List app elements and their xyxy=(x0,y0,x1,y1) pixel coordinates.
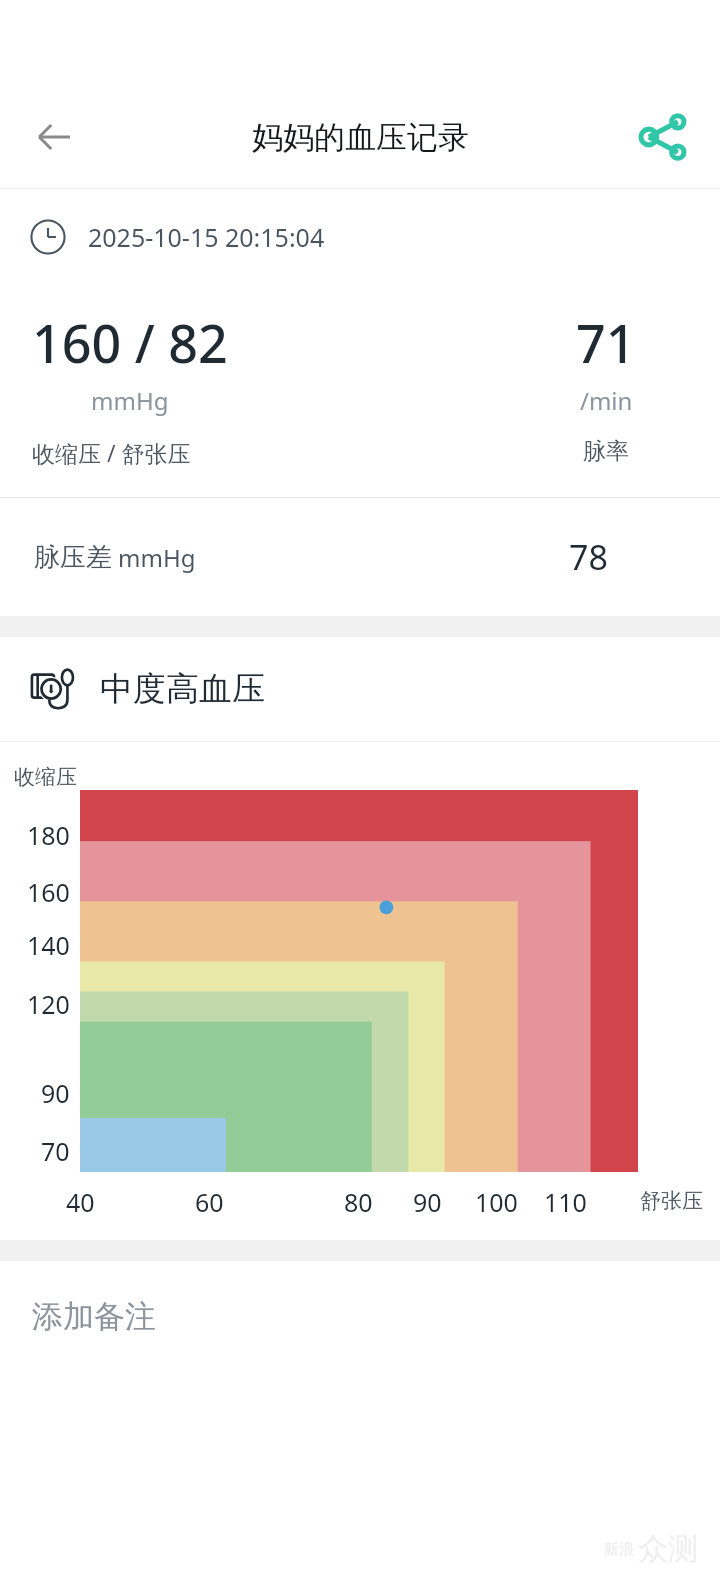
staticText: 添加备注 xyxy=(32,1297,156,1336)
staticText: 脉压差 xyxy=(34,541,112,574)
staticText: mmHg xyxy=(118,541,196,574)
staticText: /min xyxy=(580,384,633,417)
staticText: 收缩压 / 舒张压 xyxy=(32,437,191,468)
staticText: 中度高血压 xyxy=(100,668,265,710)
staticText: 71 xyxy=(576,307,636,378)
staticText: 2025-10-15 20:15:04 xyxy=(88,220,325,254)
staticText: 160 / 82 xyxy=(32,307,228,378)
staticText: 90 xyxy=(41,1076,70,1110)
button[interactable]: 分享 xyxy=(628,101,700,173)
staticText: 80 xyxy=(344,1185,373,1219)
staticText: 90 xyxy=(413,1185,442,1219)
staticText: 78 xyxy=(569,534,608,580)
staticText: 舒张压 xyxy=(640,1188,703,1214)
staticText: 110 xyxy=(544,1185,587,1219)
staticText: 160 xyxy=(27,875,70,909)
staticText: 40 xyxy=(66,1185,95,1219)
staticText: 新浪 xyxy=(604,1540,634,1559)
staticText: 180 xyxy=(27,818,70,852)
button[interactable]: 2025-10-15 20:15:04 xyxy=(0,189,720,285)
staticText: 120 xyxy=(27,987,70,1021)
button[interactable]: 添加备注 xyxy=(0,1261,720,1371)
staticText: 众测 xyxy=(638,1530,698,1568)
staticText: mmHg xyxy=(91,384,169,417)
button[interactable]: 返回 xyxy=(18,101,90,173)
button[interactable]: 脉压差 xyxy=(0,498,720,616)
staticText: 脉率 xyxy=(583,437,629,466)
staticText: 140 xyxy=(27,928,70,962)
button[interactable]: 中度高血压 xyxy=(0,637,720,741)
staticText: 100 xyxy=(475,1185,518,1219)
staticText: 60 xyxy=(195,1185,224,1219)
staticText: 妈妈的血压记录 xyxy=(252,118,469,157)
staticText: 收缩压 xyxy=(14,764,77,790)
staticText: 70 xyxy=(41,1134,70,1168)
